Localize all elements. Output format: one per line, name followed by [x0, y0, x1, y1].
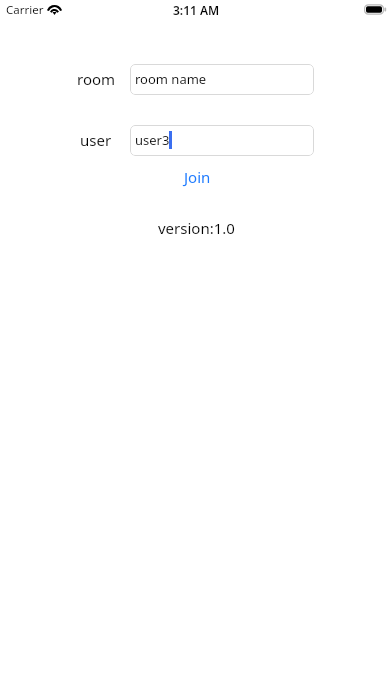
staticText: room name — [135, 70, 207, 88]
other: Battery full — [364, 4, 387, 15]
staticText: user3 — [135, 131, 170, 149]
staticText: 3:11 AM — [173, 2, 220, 18]
button[interactable]: Join — [174, 163, 221, 191]
other: Wi-Fi signal — [47, 2, 62, 14]
button[interactable]: room name — [130, 64, 314, 95]
staticText: Join — [184, 167, 211, 187]
staticText: room — [77, 69, 116, 89]
staticText: Carrier — [6, 2, 44, 18]
button[interactable]: user3 — [130, 125, 314, 156]
staticText: version:1.0 — [158, 218, 235, 238]
staticText: user — [80, 130, 112, 150]
